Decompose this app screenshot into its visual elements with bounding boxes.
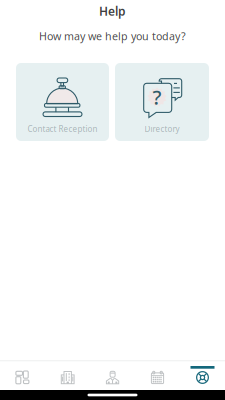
staticText: Directory [144,124,179,134]
button[interactable]: Property [45,362,90,390]
button[interactable]: Dashboard [0,362,45,390]
staticText: Help [99,3,126,19]
staticText: ? [152,84,161,110]
button[interactable]: Help [180,362,225,390]
button[interactable]: ? [115,63,209,141]
staticText: Contact Reception [27,124,97,134]
staticText: How may we help you today? [39,29,186,43]
button[interactable]: Concierge [90,362,135,390]
button[interactable]: Events [135,362,180,390]
button[interactable]: Contact Reception [16,63,109,141]
